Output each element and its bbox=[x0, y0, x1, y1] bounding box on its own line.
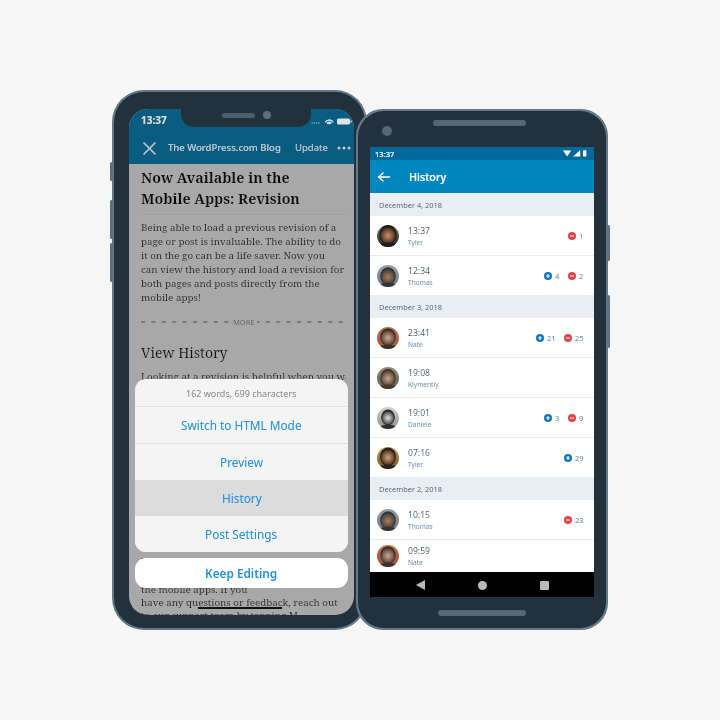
staticText: December 2, 2018 bbox=[379, 484, 442, 494]
staticText: 25 bbox=[575, 333, 584, 343]
staticText: Post Settings bbox=[205, 526, 278, 542]
staticText: Klymentiy bbox=[408, 380, 439, 389]
staticText: Switch to HTML Mode bbox=[181, 417, 302, 433]
staticText: 4 bbox=[555, 271, 560, 281]
staticText: View History bbox=[141, 343, 228, 362]
staticText: 29 bbox=[575, 453, 584, 463]
button[interactable]: Keep Editing bbox=[135, 558, 348, 588]
staticText: Preview bbox=[220, 454, 263, 470]
staticText: Send Feedback bbox=[141, 526, 241, 545]
staticText: 10:15 bbox=[408, 509, 430, 521]
staticText: 3 bbox=[555, 413, 560, 423]
staticText: The WordPress.com Blog bbox=[168, 141, 281, 154]
button[interactable]: More options bbox=[336, 140, 352, 156]
button[interactable]: Switch to HTML Mode bbox=[135, 407, 348, 443]
button[interactable]: Recent apps bbox=[532, 573, 556, 597]
staticText: We would love to hear what you think abo… bbox=[141, 555, 292, 596]
button[interactable]: 07:16 bbox=[370, 438, 594, 477]
staticText: Nate bbox=[408, 558, 423, 567]
staticText: Tyler bbox=[408, 238, 424, 247]
staticText: 12:34 bbox=[408, 265, 430, 277]
button[interactable]: History bbox=[135, 480, 348, 516]
button[interactable]: 13:37 bbox=[370, 216, 594, 255]
staticText: 162 words, 699 characters bbox=[186, 387, 297, 399]
staticText: Thomas bbox=[408, 278, 433, 287]
button[interactable]: 19:01 bbox=[370, 398, 594, 437]
button[interactable]: 19:08 bbox=[370, 358, 594, 397]
staticText: 13:37 bbox=[375, 149, 395, 159]
staticText: Looking at a revision is helpful when yo… bbox=[141, 370, 346, 397]
staticText: 19:08 bbox=[408, 367, 430, 379]
staticText: 21 bbox=[547, 333, 556, 343]
staticText: Daniele bbox=[408, 420, 432, 429]
staticText: 19:01 bbox=[408, 407, 430, 419]
staticText: 07:16 bbox=[408, 447, 430, 459]
staticText: 1 bbox=[579, 231, 584, 241]
staticText: December 4, 2018 bbox=[379, 200, 442, 210]
staticText: have any questions or feedback, reach ou… bbox=[141, 596, 338, 609]
staticText: History bbox=[222, 490, 262, 506]
button[interactable]: Home bbox=[470, 573, 494, 597]
button[interactable]: 10:15 bbox=[370, 500, 594, 539]
staticText: Tyler bbox=[408, 460, 424, 469]
staticText: Thomas bbox=[408, 522, 433, 531]
button[interactable]: Back bbox=[373, 166, 395, 188]
button[interactable]: 09:59 bbox=[370, 540, 594, 572]
staticText: 09:59 bbox=[408, 545, 430, 557]
staticText: 23 bbox=[575, 515, 584, 525]
staticText: 9 bbox=[579, 413, 584, 423]
staticText: 13:37 bbox=[408, 225, 430, 237]
staticText: MORE bbox=[233, 317, 255, 326]
staticText: to our support team by tapping M bbox=[141, 609, 298, 615]
staticText: 23:41 bbox=[408, 327, 430, 339]
staticText: December 3, 2018 bbox=[379, 302, 442, 312]
staticText: Now Available in the Mobile Apps: Revisi… bbox=[141, 168, 300, 208]
staticText: Update bbox=[295, 141, 328, 154]
staticText: Nate bbox=[408, 340, 423, 349]
staticText: 2 bbox=[579, 271, 584, 281]
button[interactable]: Preview bbox=[135, 444, 348, 480]
button[interactable]: Update bbox=[294, 141, 329, 154]
button[interactable]: 23:41 bbox=[370, 318, 594, 357]
button[interactable]: Post Settings bbox=[135, 516, 348, 552]
button[interactable]: Close bbox=[139, 138, 159, 158]
button[interactable]: Back bbox=[408, 573, 432, 597]
staticText: 13:37 bbox=[141, 113, 167, 127]
button[interactable]: 12:34 bbox=[370, 256, 594, 295]
staticText: Keep Editing bbox=[205, 565, 278, 581]
staticText: Being able to load a previous revision o… bbox=[141, 221, 345, 304]
staticText: History bbox=[409, 169, 447, 184]
